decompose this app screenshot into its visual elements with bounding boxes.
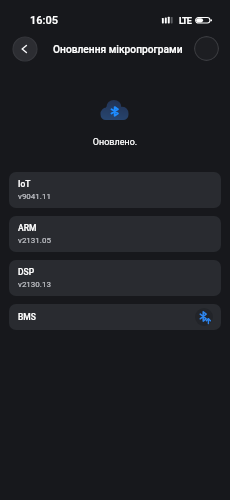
staticText: DSP: [18, 267, 35, 277]
staticText: ARM: [18, 223, 37, 233]
staticText: v2131.05: [18, 236, 51, 245]
button[interactable]: BMS: [9, 304, 221, 330]
staticText: BMS: [18, 312, 36, 322]
button[interactable]: ARM: [9, 216, 221, 252]
staticText: Оновлення мікропрограми: [53, 44, 183, 56]
button[interactable]: Back: [12, 36, 38, 62]
staticText: LTE: [179, 16, 191, 27]
staticText: v9041.11: [18, 192, 51, 201]
staticText: 16:05: [30, 14, 58, 27]
button[interactable]: Profile: [194, 36, 219, 61]
button[interactable]: Update firmware over Bluetooth: [195, 308, 213, 326]
staticText: IoT: [18, 179, 31, 189]
staticText: v2130.13: [18, 280, 51, 289]
button[interactable]: DSP: [9, 260, 221, 296]
staticText: Оновлено.: [0, 137, 230, 148]
button[interactable]: IoT: [9, 172, 221, 208]
